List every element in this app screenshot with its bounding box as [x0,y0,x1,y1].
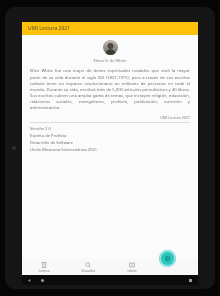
button[interactable]: Lectura [22,259,66,275]
button[interactable]: Atrás [27,278,32,283]
button[interactable]: Recientes [188,278,193,283]
button[interactable]: Inicio [40,278,45,283]
staticText: Elena G. de White [30,58,190,63]
staticText: UMI Lectura 2021 [30,115,190,120]
staticText: Buscador [81,269,96,273]
staticText: Libros [127,269,137,273]
button[interactable]: Buscador [66,259,110,275]
staticText: Espíritu de Profecía [30,133,67,138]
staticText: UMI Lectura 2021 [28,25,71,32]
staticText: Ellen White fue una mujer de dones espir… [30,68,190,110]
staticText: Lectura [38,269,50,273]
staticText: Unión Mexicana Interoceánica 2021 [30,147,98,152]
staticText: Versión 2.0 [30,126,51,131]
button[interactable]: Libros [110,259,154,275]
button[interactable]: Reproducir [159,250,176,267]
staticText: Desarrollo de Software [30,140,73,145]
